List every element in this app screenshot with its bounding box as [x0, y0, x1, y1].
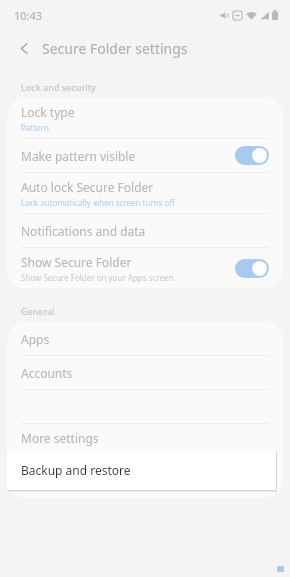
button[interactable]: Toggle Show Secure Folder — [235, 259, 269, 278]
button[interactable]: Show Secure Folder — [7, 248, 283, 288]
staticText: Show Secure Folder — [21, 254, 132, 270]
staticText: Secure Folder settings — [42, 39, 188, 58]
staticText: Lock automatically when screen turns off — [21, 197, 175, 208]
staticText: Show Secure Folder on your Apps screen. — [21, 272, 176, 283]
button[interactable]: Back — [10, 34, 38, 62]
button[interactable]: Auto lock Secure Folder — [7, 173, 283, 213]
button[interactable]: Accounts — [7, 356, 283, 389]
button[interactable]: Toggle Make pattern visible — [235, 146, 269, 165]
button[interactable]: Apps — [7, 322, 283, 355]
button[interactable]: Lock type — [7, 98, 283, 138]
button[interactable]: Backup and restore — [7, 450, 276, 490]
button[interactable]: More settings — [7, 424, 283, 464]
staticText: Lock type — [21, 104, 75, 120]
button[interactable]: About Secure Folder — [7, 465, 283, 498]
staticText: Notifications and data — [21, 223, 146, 239]
staticText: Pattern — [21, 122, 49, 133]
staticText: Accounts — [21, 365, 73, 381]
staticText: More settings — [21, 430, 99, 446]
staticText: Apps — [21, 331, 50, 347]
button[interactable]: Notifications and data — [7, 214, 283, 247]
staticText: About Secure Folder — [21, 474, 136, 490]
staticText: General — [21, 305, 55, 317]
button[interactable]: Make pattern visible — [7, 139, 283, 172]
staticText: Backup and restore — [21, 462, 131, 478]
staticText: Make pattern visible — [21, 148, 136, 164]
staticText: 10:43 — [14, 8, 43, 23]
staticText: Lock and security — [21, 81, 96, 93]
staticText: Auto lock Secure Folder — [21, 179, 154, 195]
